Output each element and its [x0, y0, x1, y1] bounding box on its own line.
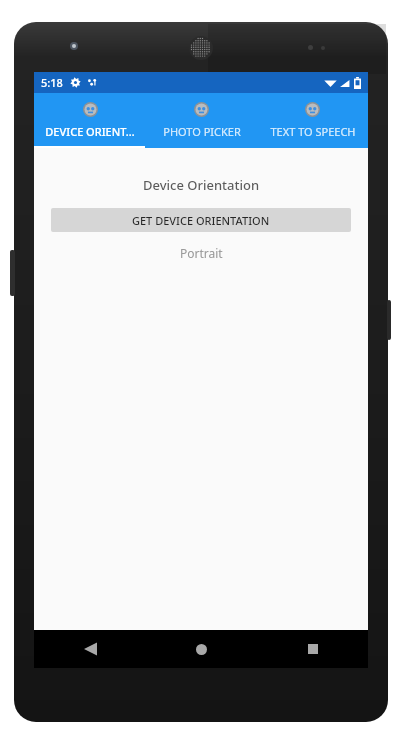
- staticText: GET DEVICE ORIENTATION: [132, 213, 270, 228]
- button[interactable]: TEXT TO SPEECH: [257, 93, 368, 148]
- staticText: DEVICE ORIENT…: [45, 124, 135, 139]
- button[interactable]: DEVICE ORIENT…: [34, 93, 146, 148]
- staticText: TEXT TO SPEECH: [270, 124, 356, 139]
- button[interactable]: Recent apps: [257, 630, 368, 668]
- button[interactable]: GET DEVICE ORIENTATION: [51, 208, 351, 232]
- button[interactable]: PHOTO PICKER: [146, 93, 257, 148]
- staticText: 5:18: [41, 75, 63, 90]
- staticText: Device Orientation: [143, 176, 260, 194]
- button[interactable]: Home: [146, 630, 257, 668]
- button[interactable]: Back: [34, 630, 146, 668]
- staticText: PHOTO PICKER: [163, 124, 241, 139]
- staticText: Portrait: [180, 245, 223, 261]
